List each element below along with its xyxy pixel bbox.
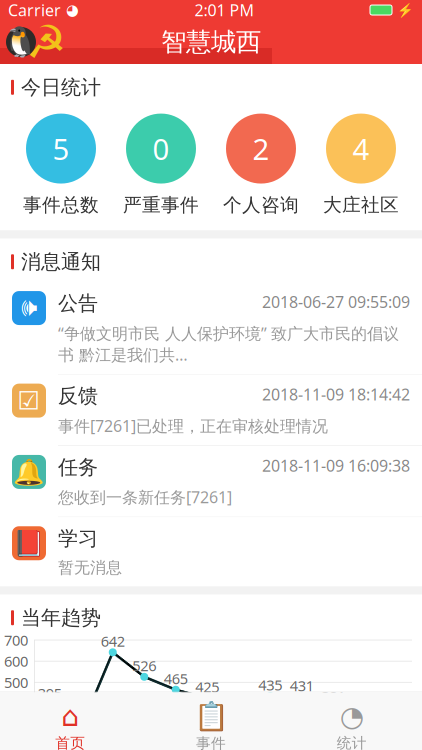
staticText: 465 bbox=[164, 669, 188, 688]
staticText: 🔔 bbox=[13, 457, 45, 486]
staticText: 首页 bbox=[55, 734, 85, 750]
button[interactable]: ◔ bbox=[281, 695, 422, 750]
staticText: 当年趋势 bbox=[21, 605, 101, 630]
staticText: 435 bbox=[258, 675, 282, 695]
button[interactable]: 🔔 bbox=[0, 446, 422, 517]
staticText: 个人咨询 bbox=[223, 194, 299, 216]
staticText: Carrier bbox=[8, 0, 61, 21]
staticText: 学习 bbox=[58, 526, 98, 551]
staticText: 统计 bbox=[337, 734, 367, 750]
staticText: 600 bbox=[4, 651, 28, 671]
staticText: 5 bbox=[52, 129, 69, 168]
staticText: 📕 bbox=[13, 529, 45, 558]
staticText: “争做文明市民 人人保护环境” 致广大市民的倡议书 黔江是我们共… bbox=[58, 323, 399, 365]
button[interactable]: 5 bbox=[11, 114, 111, 216]
staticText: 2018-06-27 09:55:09 bbox=[262, 291, 410, 312]
button[interactable]: ⌂ bbox=[0, 695, 141, 750]
staticText: 0 bbox=[152, 129, 169, 168]
staticText: ⚡ bbox=[397, 2, 414, 18]
button[interactable]: 2 bbox=[211, 114, 311, 216]
staticText: 暂无消息 bbox=[58, 558, 122, 577]
staticText: 您收到一条新任务[7261] bbox=[58, 486, 232, 508]
staticText: 今日统计 bbox=[21, 75, 101, 100]
staticText: ◕ bbox=[66, 2, 79, 18]
staticText: 2:01 PM bbox=[194, 0, 254, 21]
staticText: 📋 bbox=[193, 700, 228, 732]
staticText: 公告 bbox=[58, 291, 98, 316]
staticText: ☭ bbox=[26, 16, 67, 68]
staticText: 🐧 bbox=[2, 25, 39, 59]
staticText: 431 bbox=[290, 676, 314, 695]
button[interactable]: 📋 bbox=[141, 695, 281, 750]
staticText: 381 bbox=[321, 686, 345, 706]
staticText: 2 bbox=[252, 129, 269, 168]
staticText: 2018-11-09 16:09:38 bbox=[262, 455, 410, 476]
staticText: ◔ bbox=[340, 700, 364, 732]
button[interactable]: 4 bbox=[311, 114, 411, 216]
staticText: 事件[7261]已处理，正在审核处理情况 bbox=[58, 415, 328, 436]
button[interactable]: 🕪 bbox=[0, 282, 422, 375]
staticText: 4 bbox=[352, 129, 369, 168]
staticText: 425 bbox=[195, 677, 219, 697]
button[interactable]: 0 bbox=[111, 114, 211, 216]
staticText: ⌂ bbox=[61, 700, 79, 732]
staticText: 🕪 bbox=[21, 296, 37, 320]
staticText: 任务 bbox=[58, 455, 98, 479]
staticText: 事件 bbox=[196, 734, 226, 750]
staticText: 500 bbox=[4, 673, 28, 692]
staticText: 167 bbox=[353, 732, 377, 750]
staticText: 大庄社区 bbox=[323, 194, 399, 216]
staticText: 严重事件 bbox=[123, 194, 199, 216]
staticText: 287 bbox=[69, 706, 93, 726]
button[interactable]: 📕 bbox=[0, 517, 422, 586]
staticText: 消息通知 bbox=[21, 249, 101, 274]
staticText: 642 bbox=[101, 631, 125, 651]
staticText: 事件总数 bbox=[23, 194, 99, 216]
staticText: 395 bbox=[38, 683, 62, 703]
button[interactable]: ☑ bbox=[0, 375, 422, 446]
staticText: 智慧城西 bbox=[161, 26, 261, 57]
staticText: 2018-11-09 18:14:42 bbox=[262, 384, 410, 405]
staticText: 700 bbox=[4, 630, 28, 650]
staticText: ☑ bbox=[17, 386, 40, 415]
staticText: 反馈 bbox=[58, 384, 98, 408]
staticText: 526 bbox=[132, 656, 156, 675]
